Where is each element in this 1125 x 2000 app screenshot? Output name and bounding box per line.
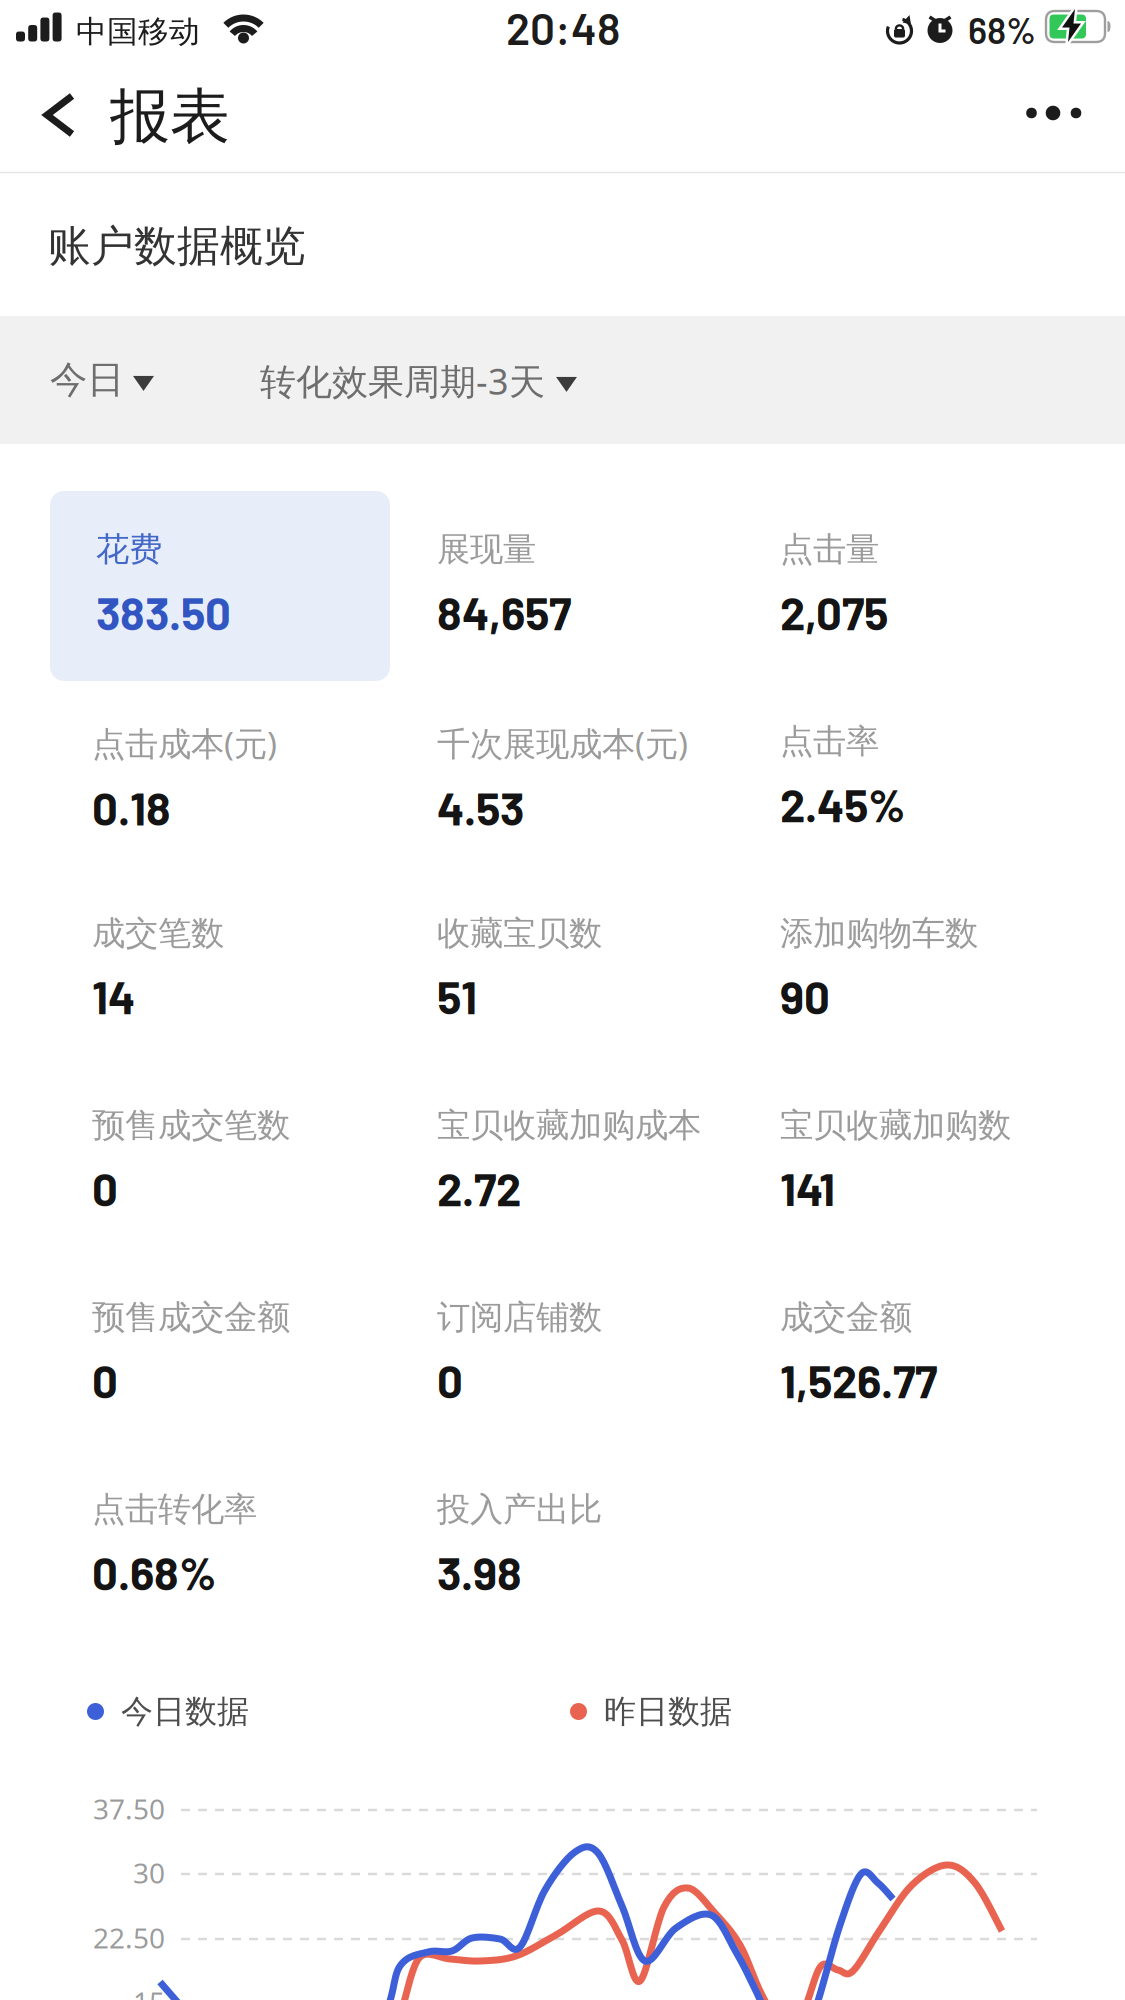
staticText: 14 — [92, 969, 135, 1023]
button[interactable]: 添加购物车数 — [0, 0, 198, 110]
staticText: 4.53 — [437, 780, 524, 835]
staticText: 成交金额 — [780, 1297, 912, 1338]
button[interactable]: 点击转化率 — [0, 0, 165, 110]
button[interactable]: 点击量 — [0, 0, 108, 110]
staticText: 今日数据 — [121, 1692, 249, 1731]
staticText: 37.50 — [93, 1790, 165, 1827]
staticText: 花费 — [96, 529, 162, 570]
button[interactable]: 今日 — [0, 0, 154, 403]
staticText: 1,526.77 — [780, 1353, 937, 1407]
staticText: 预售成交笔数 — [92, 1105, 290, 1146]
staticText: 0.68% — [92, 1545, 216, 1599]
staticText: 报表 — [110, 80, 230, 154]
staticText: 20:48 — [506, 1, 620, 54]
staticText: 点击成本(元) — [92, 721, 277, 765]
staticText: 90 — [780, 969, 830, 1023]
button[interactable]: 宝贝收藏加购数 — [0, 0, 231, 110]
button[interactable]: More — [0, 0, 1082, 136]
button[interactable]: 订阅店铺数 — [0, 0, 165, 110]
staticText: 成交笔数 — [92, 913, 224, 954]
staticText: 0 — [92, 1161, 118, 1215]
button[interactable]: 转化效果周期-3天 — [0, 0, 577, 405]
button[interactable]: 成交笔数 — [0, 0, 132, 110]
button[interactable]: 投入产出比 — [0, 0, 165, 110]
staticText: 投入产出比 — [437, 1489, 602, 1530]
staticText: 2.72 — [437, 1161, 521, 1215]
staticText: 账户数据概览 — [48, 220, 306, 272]
button[interactable]: 点击率 — [0, 0, 125, 110]
button[interactable]: 千次展现成本(元) — [0, 0, 251, 114]
staticText: 68% — [968, 8, 1036, 51]
staticText: 22.50 — [93, 1919, 165, 1956]
staticText: 0 — [437, 1353, 463, 1407]
staticText: 51 — [437, 969, 477, 1023]
staticText: 千次展现成本(元) — [437, 721, 688, 765]
button[interactable]: 展现量 — [0, 0, 134, 110]
staticText: 0.18 — [92, 780, 171, 835]
staticText: 2.45% — [780, 777, 905, 831]
button[interactable]: 预售成交笔数 — [0, 0, 198, 110]
staticText: 订阅店铺数 — [437, 1297, 602, 1338]
staticText: 宝贝收藏加购成本 — [437, 1105, 701, 1146]
staticText: 点击率 — [780, 721, 879, 762]
staticText: 展现量 — [437, 529, 536, 570]
button[interactable]: 花费 — [0, 0, 340, 190]
staticText: 84,657 — [437, 585, 571, 639]
staticText: 30 — [133, 1854, 165, 1891]
button[interactable]: 收藏宝贝数 — [0, 0, 165, 110]
button[interactable]: 预售成交金额 — [0, 0, 198, 110]
staticText: 2,075 — [780, 585, 888, 639]
staticText: 中国移动 — [76, 13, 200, 51]
staticText: 点击转化率 — [92, 1489, 257, 1530]
staticText: 15 — [133, 1983, 165, 2000]
staticText: 宝贝收藏加购数 — [780, 1105, 1011, 1146]
staticText: 0 — [92, 1353, 118, 1407]
staticText: 添加购物车数 — [780, 913, 978, 954]
staticText: 转化效果周期-3天 — [260, 357, 545, 405]
staticText: 141 — [780, 1161, 835, 1215]
staticText: 3.98 — [437, 1545, 522, 1599]
button[interactable]: 宝贝收藏加购成本 — [0, 0, 264, 110]
button[interactable]: Back — [0, 0, 78, 138]
staticText: 点击量 — [780, 529, 879, 570]
staticText: 预售成交金额 — [92, 1297, 290, 1338]
staticText: 昨日数据 — [604, 1692, 732, 1731]
staticText: 收藏宝贝数 — [437, 913, 602, 954]
button[interactable]: 点击成本(元) — [0, 0, 185, 114]
staticText: 383.50 — [96, 585, 231, 639]
button[interactable]: 成交金额 — [0, 0, 157, 110]
staticText: 今日 — [50, 357, 124, 403]
